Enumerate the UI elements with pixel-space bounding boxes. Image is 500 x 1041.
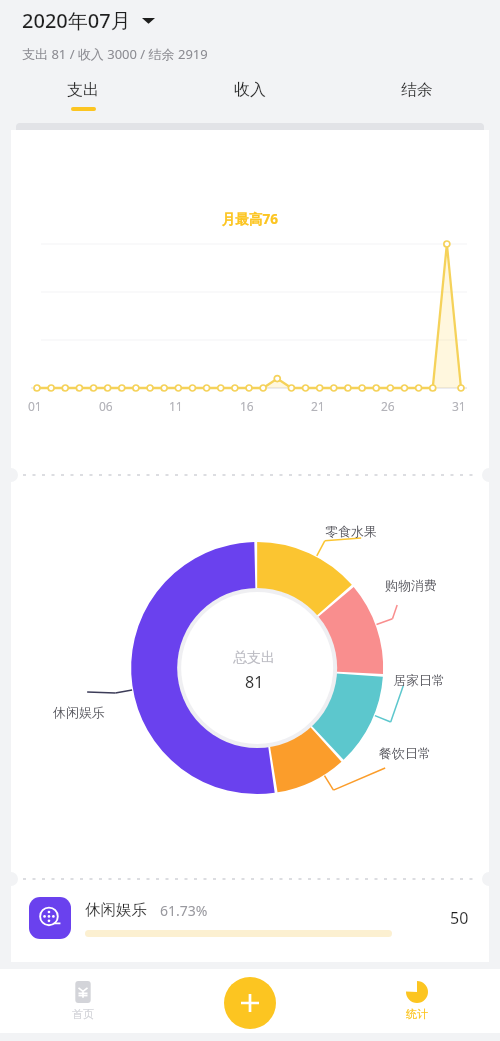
- staticText: 61.73%: [160, 901, 208, 920]
- button[interactable]: 收入: [166, 80, 333, 111]
- staticText: 首页: [72, 1007, 94, 1021]
- button[interactable]: 统计: [333, 969, 500, 1033]
- staticText: 餐饮日常: [379, 745, 431, 761]
- staticText: 统计: [406, 1007, 428, 1021]
- button[interactable]: 休闲娱乐: [11, 886, 489, 950]
- staticText: 21: [311, 398, 325, 414]
- staticText: 休闲娱乐: [85, 900, 147, 920]
- button[interactable]: 结余: [333, 80, 500, 111]
- staticText: 结余: [401, 80, 433, 100]
- staticText: 支出 81 / 收入 3000 / 结余 2919: [22, 45, 208, 63]
- staticText: 50: [450, 907, 469, 929]
- staticText: 居家日常: [393, 672, 445, 688]
- staticText: 81: [245, 671, 264, 693]
- button[interactable]: 2020年07月: [22, 7, 155, 34]
- staticText: 06: [99, 398, 113, 414]
- staticText: 01: [28, 398, 42, 414]
- staticText: 16: [240, 398, 254, 414]
- staticText: 2020年07月: [22, 7, 131, 34]
- staticText: 26: [381, 398, 395, 414]
- staticText: 休闲娱乐: [53, 704, 105, 720]
- staticText: 月最高76: [222, 210, 278, 228]
- staticText: 购物消费: [385, 577, 437, 593]
- staticText: 11: [169, 398, 183, 414]
- staticText: 总支出: [233, 649, 275, 667]
- staticText: 收入: [234, 80, 266, 100]
- staticText: 31: [452, 398, 466, 414]
- button[interactable]: Add record: [224, 977, 276, 1029]
- button[interactable]: 支出: [0, 80, 166, 111]
- staticText: 零食水果: [325, 523, 377, 539]
- staticText: 支出: [67, 80, 99, 100]
- button[interactable]: 首页: [0, 969, 166, 1033]
